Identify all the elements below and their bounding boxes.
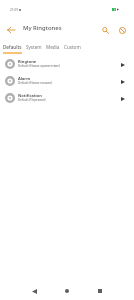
button[interactable]: Defaults [1,44,24,54]
button[interactable]: Back [24,280,44,300]
button[interactable]: Play [118,60,128,70]
staticText: Default (Новое приветствие) [18,64,60,68]
staticText: Defaults [3,44,22,50]
button[interactable]: Home [57,280,77,300]
button[interactable]: Ringtone [0,55,134,72]
staticText: 21:09 [10,8,18,12]
staticText: System [26,44,42,50]
button[interactable]: Back [1,20,21,40]
button[interactable]: Custom [62,44,83,54]
button[interactable]: Notification [0,89,134,106]
button[interactable]: Play [118,77,128,87]
button[interactable]: Block [114,22,131,39]
staticText: Media [46,44,60,50]
button[interactable]: Alarm [0,72,134,89]
staticText: Notification [18,93,42,98]
button[interactable]: Recents [90,280,110,300]
button[interactable]: System [24,44,44,54]
staticText: My Ringtones [23,24,62,32]
staticText: Custom [64,44,81,50]
staticText: Default (Перезвон) [18,98,46,102]
button[interactable]: Search [97,22,114,39]
button[interactable]: Media [44,44,62,54]
staticText: Alarm [18,76,31,81]
button[interactable]: Play [118,94,128,104]
staticText: Default (Новое начало) [18,81,52,85]
staticText: Ringtone [18,59,37,64]
